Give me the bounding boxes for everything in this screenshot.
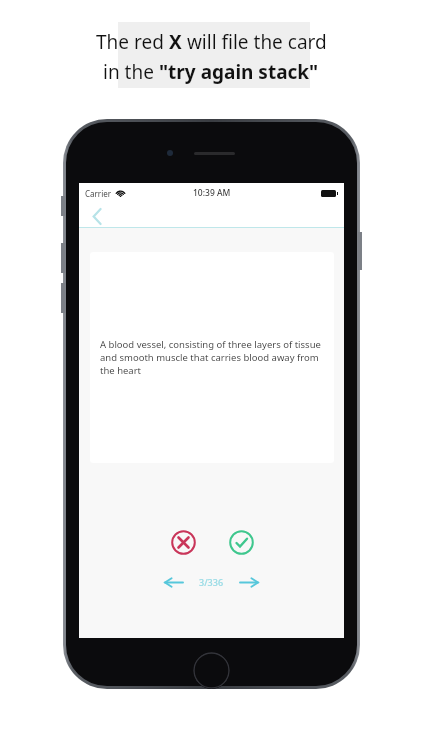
staticText: 10:39 AM [193,187,231,199]
button[interactable]: Got it [224,525,258,559]
button[interactable]: A blood vessel, consisting of three laye… [90,252,334,463]
staticText: "try again stack" [159,59,319,85]
staticText: will file the card [182,29,327,55]
staticText: The red [96,29,169,55]
staticText: X [169,29,182,55]
button[interactable]: Previous card [159,571,189,593]
button[interactable]: Back [86,204,108,228]
button[interactable]: Try again [166,525,200,559]
staticText: A blood vessel, consisting of three laye… [100,338,324,377]
staticText: in the [103,59,159,85]
staticText: 3/336 [199,576,224,588]
staticText: Carrier [85,188,112,199]
button[interactable]: Next card [234,571,264,593]
